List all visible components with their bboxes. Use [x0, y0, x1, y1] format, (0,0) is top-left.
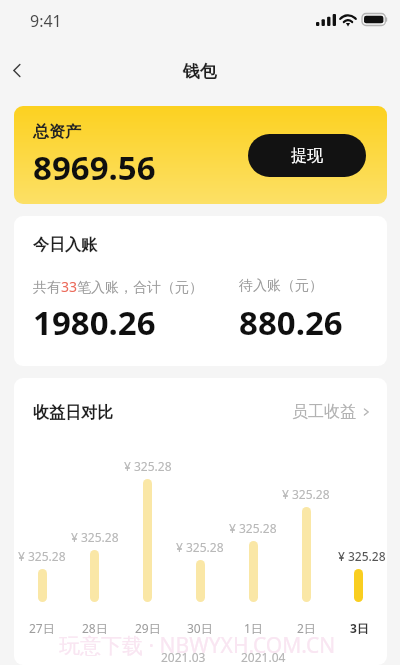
staticText: 收益日对比 — [33, 403, 113, 423]
staticText: 27日 — [29, 620, 55, 636]
staticText: 2021.04 — [241, 649, 286, 665]
staticText: 玩意下载 · NBWYXH.COM.CN — [59, 631, 336, 660]
staticText: 3日 — [350, 620, 369, 636]
button[interactable]: Back — [0, 48, 39, 93]
staticText: 待入账（元） — [239, 277, 323, 295]
staticText: 总资产 — [33, 122, 81, 142]
staticText: ¥ 325.28 — [338, 548, 386, 564]
staticText: ¥ 325.28 — [71, 529, 119, 545]
button[interactable]: 员工收益 — [282, 392, 380, 432]
button[interactable]: 提现 — [248, 134, 366, 177]
staticText: 28日 — [82, 620, 108, 636]
staticText: ¥ 325.28 — [282, 486, 330, 502]
staticText: 1日 — [244, 620, 263, 636]
staticText: 2021.03 — [161, 649, 206, 665]
staticText: 2日 — [297, 620, 316, 636]
staticText: 1980.26 — [33, 300, 156, 345]
staticText: ¥ 325.28 — [176, 539, 224, 555]
staticText: ¥ 325.28 — [229, 520, 277, 536]
staticText: 钱包 — [183, 61, 217, 82]
staticText: 8969.56 — [33, 145, 156, 190]
staticText: 880.26 — [239, 300, 343, 345]
staticText: 员工收益 — [292, 402, 356, 422]
staticText: 30日 — [187, 620, 213, 636]
staticText: 29日 — [135, 620, 161, 636]
staticText: 共有33笔入账，合计（元） — [33, 277, 204, 296]
staticText: ¥ 325.28 — [124, 458, 172, 474]
staticText: 今日入账 — [33, 235, 97, 255]
staticText: ¥ 325.28 — [18, 548, 66, 564]
staticText: 提现 — [291, 146, 323, 166]
staticText: 9:41 — [30, 10, 62, 32]
